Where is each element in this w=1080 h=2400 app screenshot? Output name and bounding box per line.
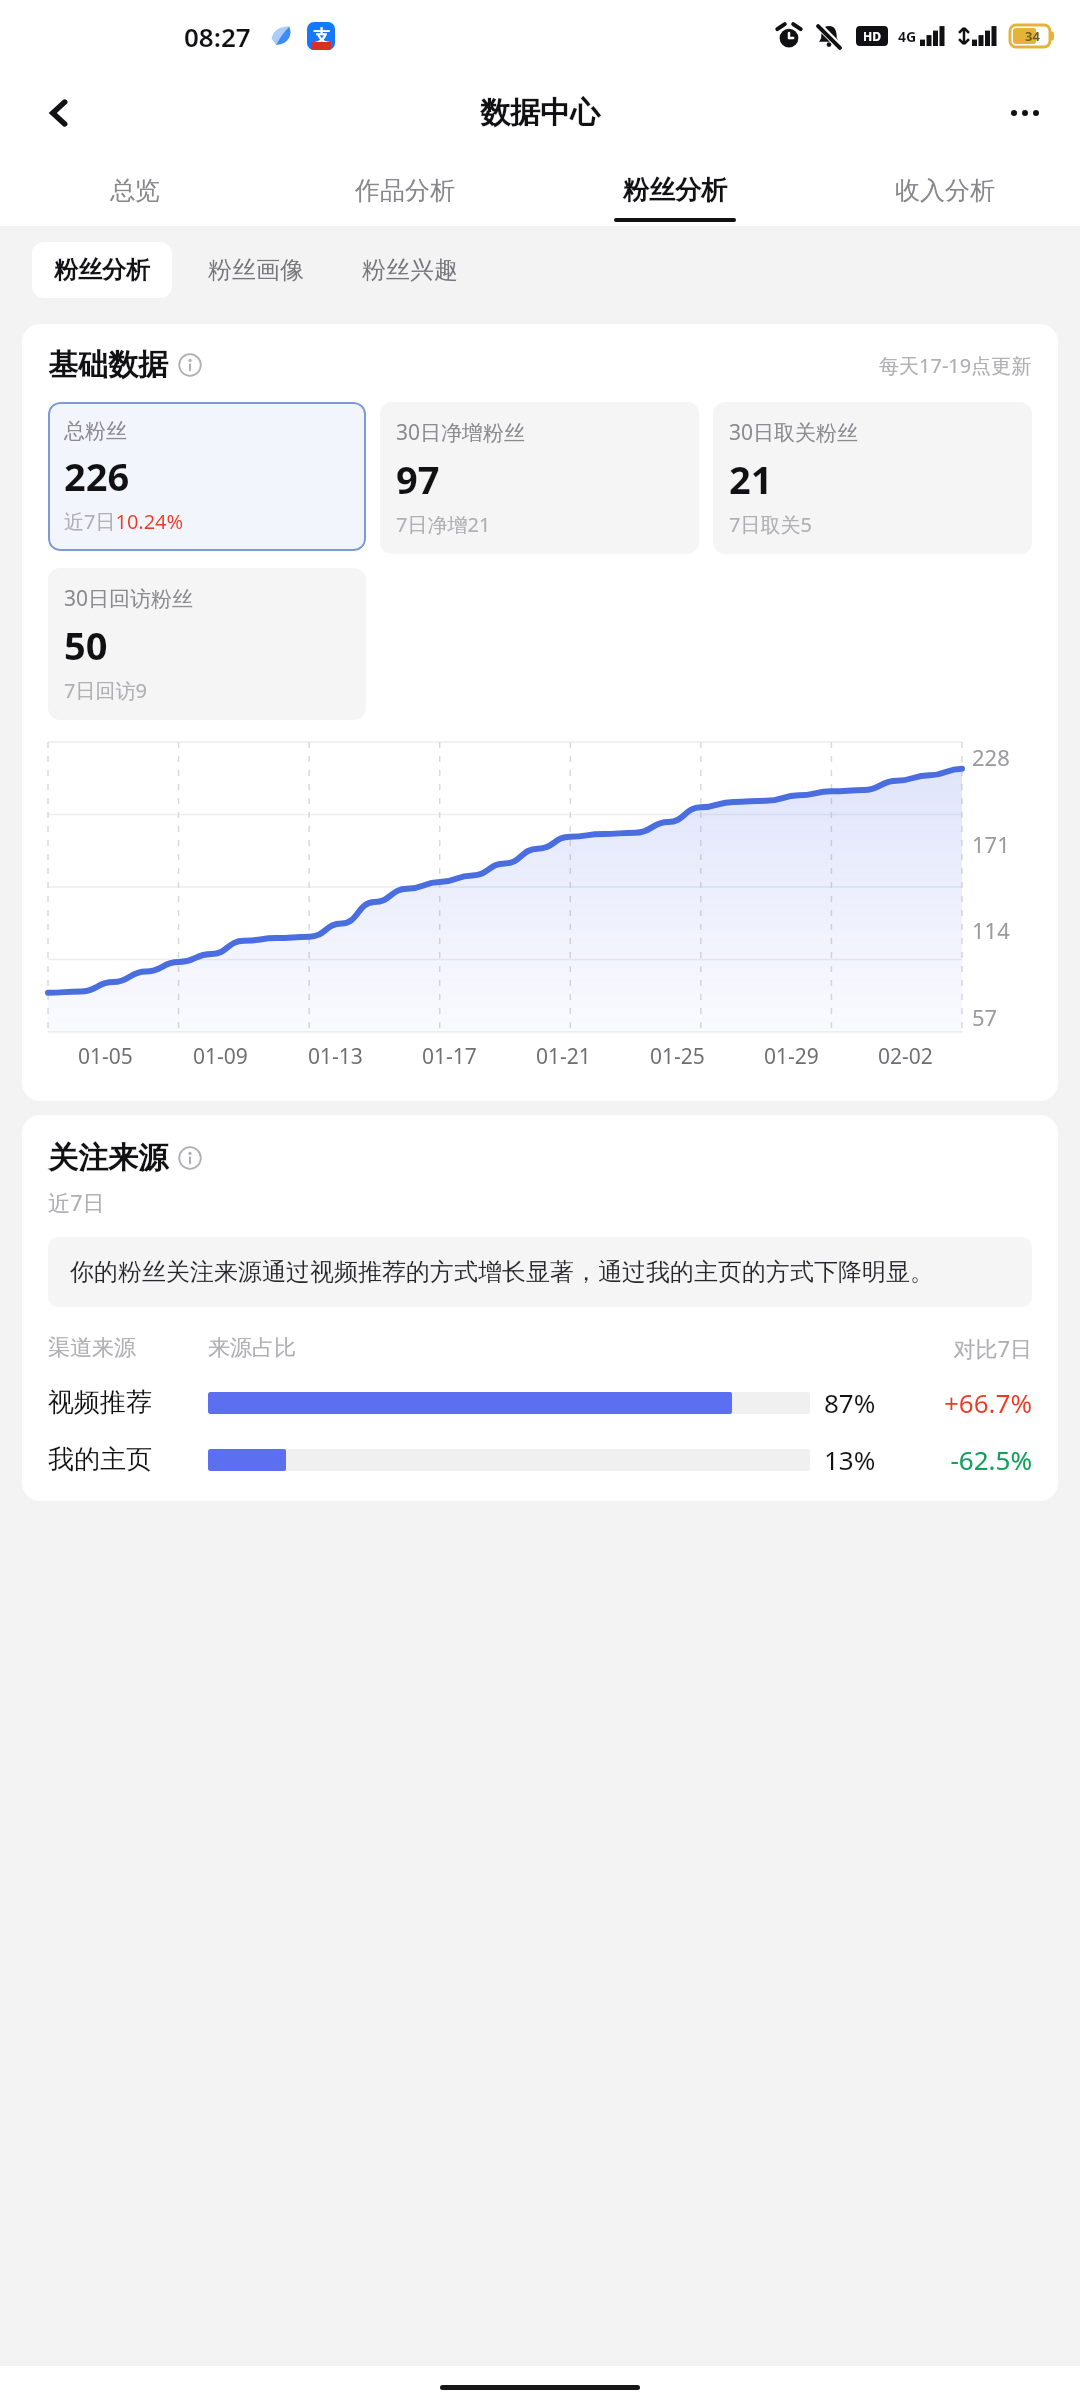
staticText: 渠道来源 — [48, 1334, 208, 1362]
staticText: 57 — [972, 1002, 998, 1032]
staticText: 粉丝分析 — [623, 174, 727, 207]
staticText: 来源占比 — [208, 1334, 902, 1362]
staticText: -62.5% — [902, 1442, 1032, 1477]
staticText: 228 — [972, 742, 1010, 772]
staticText: 87% — [824, 1385, 902, 1420]
staticText: 01-25 — [650, 1042, 705, 1071]
button[interactable]: 总粉丝 — [48, 402, 366, 551]
button[interactable]: 30日净增粉丝 — [380, 402, 699, 554]
button[interactable]: 粉丝分析 — [540, 154, 810, 226]
staticText: 30日净增粉丝 — [396, 418, 526, 447]
staticText: 对比7日 — [902, 1333, 1032, 1363]
staticText: 01-17 — [422, 1042, 477, 1071]
button[interactable]: 收入分析 — [810, 154, 1080, 226]
staticText: 基础数据 — [48, 346, 168, 384]
button[interactable]: 30日回访粉丝 — [48, 568, 366, 720]
staticText: 30日取关粉丝 — [729, 418, 859, 447]
staticText: 01-13 — [308, 1042, 363, 1071]
staticText: 关注来源 — [48, 1139, 168, 1177]
staticText: HD — [863, 28, 881, 44]
button[interactable]: More options — [996, 84, 1054, 142]
button[interactable]: 粉丝画像 — [186, 242, 326, 298]
staticText: 13% — [824, 1442, 902, 1477]
staticText: 作品分析 — [355, 175, 455, 206]
button[interactable]: 我的主页 — [48, 1442, 1032, 1477]
button[interactable]: 总览 — [0, 154, 270, 226]
staticText: 7日回访9 — [64, 677, 147, 704]
button[interactable]: 粉丝分析 — [32, 242, 172, 298]
staticText: 总粉丝 — [64, 418, 127, 444]
staticText: 08:27 — [184, 19, 251, 54]
staticText: 01-21 — [536, 1042, 591, 1071]
staticText: 粉丝分析 — [54, 255, 150, 285]
staticText: 01-29 — [764, 1042, 819, 1071]
staticText: 4G — [898, 27, 917, 46]
staticText: 30日回访粉丝 — [64, 584, 194, 613]
staticText: 226 — [64, 450, 130, 502]
button[interactable]: 30日取关粉丝 — [713, 402, 1032, 554]
staticText: 7日净增21 — [396, 511, 491, 538]
staticText: 我的主页 — [48, 1443, 208, 1476]
staticText: 你的粉丝关注来源通过视频推荐的方式增长显著，通过我的主页的方式下降明显。 — [70, 1257, 934, 1287]
button[interactable]: 作品分析 — [270, 154, 540, 226]
staticText: 近7日10.24% — [64, 508, 184, 535]
staticText: 粉丝兴趣 — [362, 255, 458, 285]
staticText: 21 — [729, 453, 773, 505]
staticText: 171 — [972, 829, 1010, 859]
staticText: 7日取关5 — [729, 511, 812, 538]
staticText: 97 — [396, 453, 440, 505]
staticText: 02-02 — [878, 1042, 933, 1071]
staticText: 50 — [64, 619, 108, 671]
staticText: 总览 — [110, 175, 160, 206]
staticText: 视频推荐 — [48, 1386, 208, 1419]
staticText: +66.7% — [902, 1385, 1032, 1420]
staticText: 每天17-19点更新 — [879, 352, 1032, 379]
staticText: 34 — [1025, 27, 1040, 45]
staticText: 114 — [972, 915, 1010, 945]
staticText: 数据中心 — [480, 94, 600, 132]
staticText: 01-05 — [78, 1042, 133, 1071]
staticText: 01-09 — [193, 1042, 248, 1071]
staticText: 支 — [313, 26, 330, 47]
button[interactable]: Back — [30, 84, 88, 142]
staticText: 粉丝画像 — [208, 255, 304, 285]
button[interactable]: 粉丝兴趣 — [340, 242, 480, 298]
staticText: 收入分析 — [895, 175, 995, 206]
staticText: 近7日 — [48, 1187, 105, 1217]
button[interactable]: 视频推荐 — [48, 1385, 1032, 1420]
